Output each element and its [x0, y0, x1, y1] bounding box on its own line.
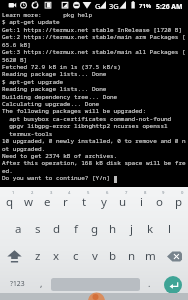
staticText: t	[82, 194, 87, 210]
staticText: l	[168, 221, 171, 237]
staticText: Get:1 https://termux.net stable InReleas…	[2, 26, 183, 34]
staticText: ed.	[2, 167, 13, 175]
staticText: Calculating upgrade... Done	[2, 100, 100, 108]
staticText: 6	[106, 190, 109, 196]
button[interactable]: Enter	[164, 276, 182, 294]
button[interactable]: .	[141, 270, 158, 297]
staticText: ?123	[10, 279, 25, 288]
staticText: The following packages will be upgraded:	[2, 107, 147, 115]
staticText: .	[148, 277, 151, 289]
button[interactable]: g	[85, 216, 104, 243]
staticText: b	[109, 248, 117, 264]
staticText: $ apt-get update	[2, 18, 60, 26]
button[interactable]: 4	[56, 188, 75, 215]
staticText: $ apt-get upgrade	[2, 78, 64, 86]
staticText: o	[156, 194, 163, 210]
button[interactable]: l	[160, 216, 179, 243]
staticText: i	[140, 194, 143, 210]
button[interactable]: m	[141, 243, 160, 270]
staticText: j	[130, 221, 133, 237]
staticText: Get:3 https://termux.net stable/main all…	[2, 48, 186, 56]
staticText: r	[63, 194, 68, 210]
button[interactable]: x	[47, 243, 66, 270]
button[interactable]: s	[28, 216, 47, 243]
button[interactable]: 6	[94, 188, 113, 215]
staticText: 9	[162, 190, 165, 196]
staticText: h	[109, 221, 117, 237]
button[interactable]: j	[122, 216, 141, 243]
staticText: u	[119, 194, 127, 210]
staticText: e	[44, 194, 51, 210]
staticText: k	[147, 221, 154, 237]
staticText: 3G	[109, 1, 119, 11]
staticText: f	[74, 221, 78, 237]
staticText: ,	[40, 277, 43, 289]
staticText: n	[128, 248, 136, 264]
staticText: 71%	[139, 2, 152, 10]
staticText: 65.6 kB]	[2, 41, 31, 49]
staticText: 5620 B]	[2, 56, 28, 64]
staticText: Reading package lists... Done	[2, 85, 107, 93]
staticText: Reading package lists... Done	[2, 70, 107, 78]
staticText: apt busybox ca-certificates command-not-…	[2, 115, 172, 123]
staticText: 5:26 AM	[156, 2, 183, 11]
button[interactable]: 8	[132, 188, 151, 215]
staticText: v	[92, 248, 98, 264]
button[interactable]: b	[103, 243, 122, 270]
staticText: 7	[125, 190, 128, 196]
staticText: 5	[87, 190, 90, 196]
button[interactable]: 9	[150, 188, 169, 215]
staticText: 0	[181, 190, 184, 196]
staticText: s	[35, 221, 41, 237]
staticText: 4	[68, 190, 71, 196]
staticText: g	[91, 221, 99, 237]
button[interactable]: 7	[113, 188, 132, 215]
button[interactable]: z	[28, 243, 47, 270]
staticText: Do you want to continue? [Y/n]	[2, 174, 111, 182]
staticText: ot upgraded.	[2, 145, 46, 153]
button[interactable]: ?123	[0, 270, 34, 297]
staticText: After this operation, 168 kB disk space …	[2, 159, 186, 167]
button[interactable]: Backspace	[160, 243, 188, 270]
staticText: y	[101, 194, 107, 210]
staticText: 1	[12, 190, 15, 196]
button[interactable]: k	[141, 216, 160, 243]
staticText: 2	[31, 190, 34, 196]
staticText: c	[73, 248, 79, 264]
staticText: Learn more: pkg help	[2, 11, 93, 19]
button[interactable]: Shift	[0, 243, 28, 270]
staticText: m	[145, 248, 156, 264]
button[interactable]: h	[103, 216, 122, 243]
staticText: Fetched 72.9 kB in 1s (37.5 kB/s)	[2, 63, 121, 71]
button[interactable]: c	[66, 243, 85, 270]
button[interactable]: 5	[75, 188, 94, 215]
staticText: a	[15, 221, 22, 237]
staticText: Need to get 2374 kB of archives.	[2, 152, 118, 160]
button[interactable]: v	[85, 243, 104, 270]
staticText: Get:2 https://termux.net stable/main arm…	[2, 33, 186, 41]
staticText: p	[175, 194, 183, 210]
button[interactable]: ,	[33, 270, 50, 297]
button[interactable]: 0	[169, 188, 188, 215]
staticText: d	[53, 221, 61, 237]
button[interactable]: n	[122, 243, 141, 270]
staticText: gpgv libgpg-error libnghttp2 ncurses ope…	[2, 122, 168, 130]
staticText: w	[24, 194, 34, 210]
staticText: termux-tools	[2, 130, 53, 138]
staticText: x	[53, 248, 60, 264]
staticText: 3	[50, 190, 53, 196]
staticText: 8	[144, 190, 147, 196]
staticText: z	[35, 248, 41, 264]
button[interactable]: 2	[19, 188, 38, 215]
staticText: 10 upgraded, 0 newly installed, 0 to rem…	[2, 137, 186, 145]
staticText: Building dependency tree... Done	[2, 93, 118, 101]
button[interactable]: a	[9, 216, 28, 243]
button[interactable]: d	[47, 216, 66, 243]
staticText: G	[95, 1, 101, 11]
button[interactable]: f	[66, 216, 85, 243]
button[interactable]: 1	[0, 188, 19, 215]
staticText: q	[6, 194, 14, 210]
button[interactable]: 3	[38, 188, 57, 215]
